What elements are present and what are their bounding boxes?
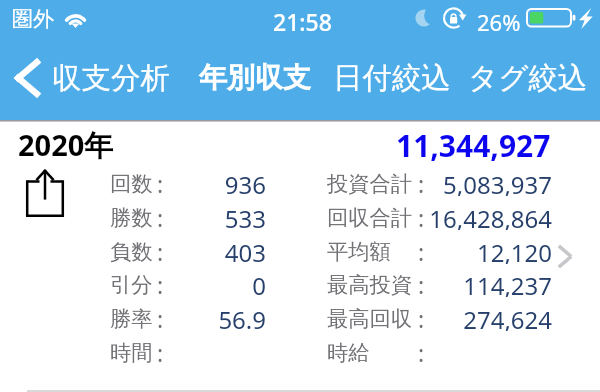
staticText: 負数: [110, 238, 153, 265]
staticText: 日付絞込: [333, 60, 451, 97]
staticText: :: [157, 337, 164, 365]
staticText: 12,120: [476, 236, 552, 264]
staticText: :: [157, 236, 164, 264]
staticText: 21:58: [273, 6, 332, 37]
staticText: 最高回収: [327, 305, 413, 332]
staticText: :: [418, 202, 425, 230]
button[interactable]: Next: [548, 235, 582, 277]
staticText: 26%: [477, 7, 521, 37]
staticText: タグ絞込: [468, 60, 588, 97]
staticText: 0: [252, 269, 266, 297]
staticText: 533: [224, 202, 266, 230]
button[interactable]: 収支分析: [52, 60, 170, 97]
staticText: 時給: [327, 339, 370, 366]
staticText: :: [157, 269, 164, 297]
staticText: 圏外: [12, 6, 54, 32]
staticText: 最高投資: [327, 271, 413, 298]
button[interactable]: 日付絞込: [333, 60, 451, 97]
staticText: 11,344,927: [396, 125, 551, 166]
staticText: 114,237: [463, 269, 552, 297]
button[interactable]: Share: [18, 160, 73, 222]
staticText: 403: [224, 236, 266, 264]
staticText: 収支分析: [52, 60, 170, 97]
staticText: :: [418, 269, 425, 297]
staticText: :: [157, 168, 164, 196]
staticText: 回数: [110, 170, 153, 197]
staticText: 引分: [110, 271, 153, 298]
staticText: :: [418, 337, 425, 365]
staticText: 年別収支: [199, 60, 311, 95]
staticText: 16,428,864: [429, 202, 552, 230]
staticText: 274,624: [463, 303, 552, 331]
staticText: 時間: [110, 339, 153, 366]
staticText: 5,083,937: [443, 168, 552, 196]
staticText: :: [157, 303, 164, 331]
staticText: 936: [224, 168, 266, 196]
staticText: 2020年: [18, 125, 114, 165]
staticText: 勝数: [110, 204, 153, 231]
staticText: :: [418, 303, 425, 331]
button[interactable]: タグ絞込: [468, 60, 588, 97]
staticText: :: [418, 168, 425, 196]
button[interactable]: 年別収支: [199, 60, 311, 95]
staticText: 56.9: [218, 303, 266, 331]
staticText: :: [157, 202, 164, 230]
staticText: 平均額: [327, 238, 391, 265]
staticText: 勝率: [110, 305, 153, 332]
button[interactable]: Back: [0, 44, 50, 120]
staticText: 回収合計: [327, 204, 413, 231]
staticText: :: [418, 236, 425, 264]
staticText: 投資合計: [327, 170, 413, 197]
